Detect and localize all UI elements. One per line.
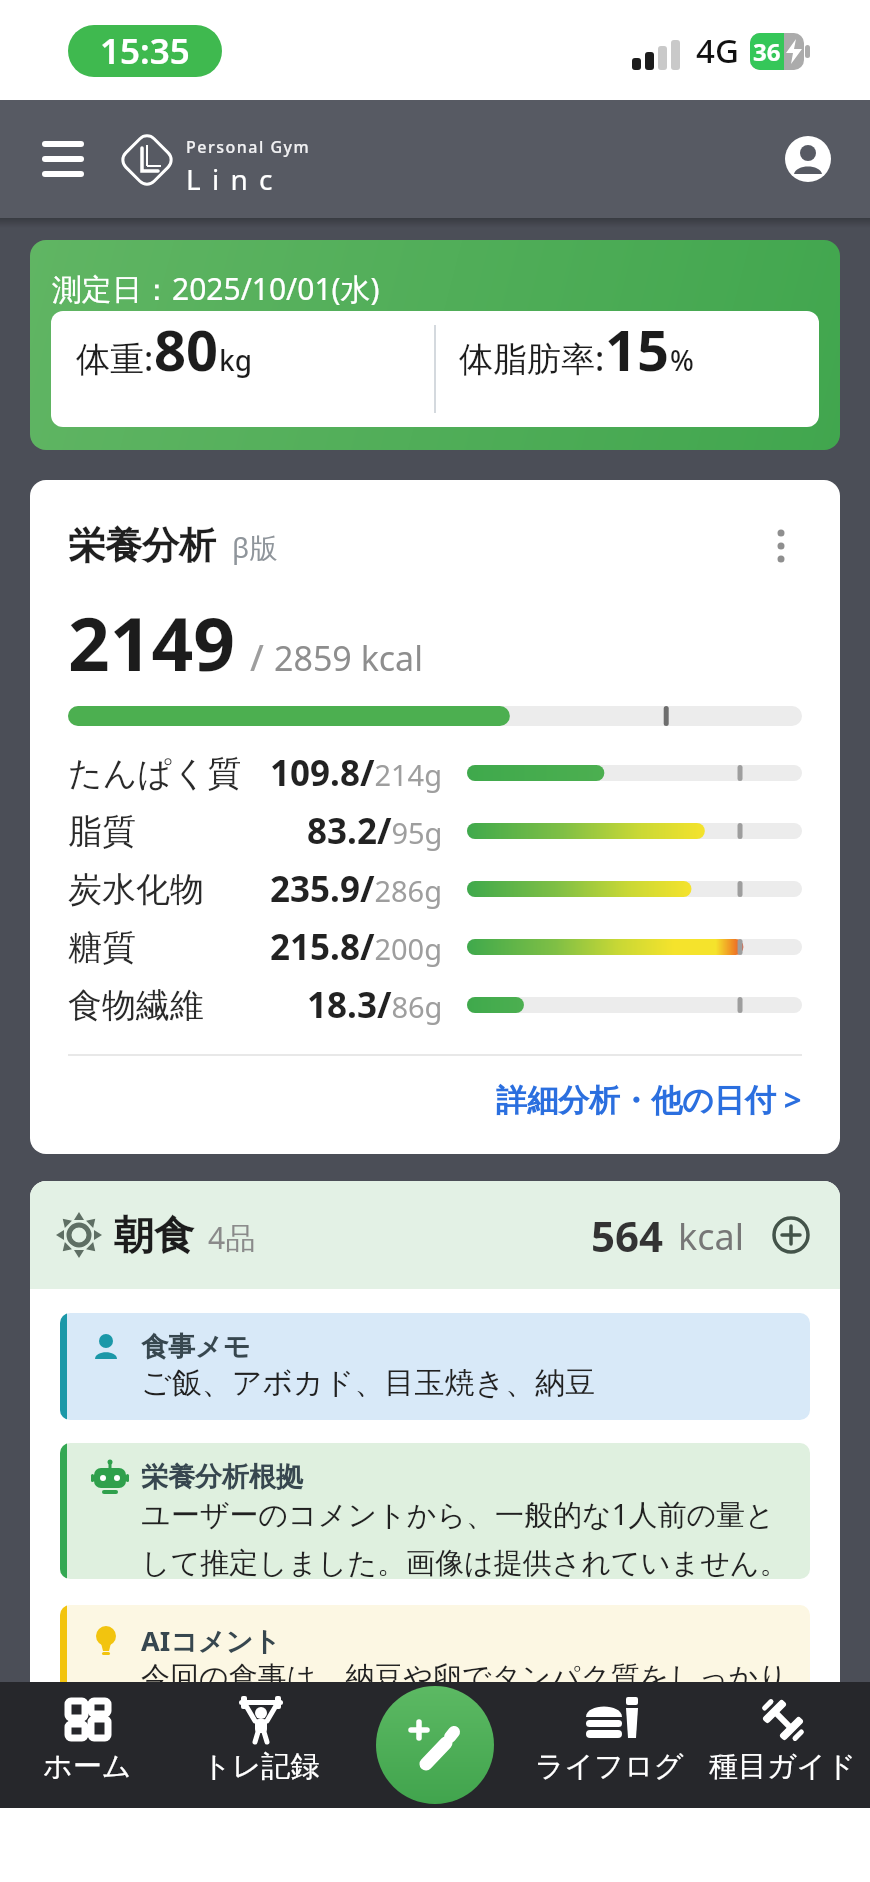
staticText: 脂質 [68,810,136,853]
staticText: ホーム [43,1748,132,1785]
button[interactable]: ライフログ [522,1682,696,1808]
staticText: 18.3/86g [307,981,443,1029]
staticText: 2149 [68,593,236,692]
staticText: 15 [605,311,670,387]
staticText: Personal Gym [186,136,311,158]
staticText: 詳細分析・他の日付 > [496,1078,802,1120]
button[interactable]: トレ記録 [174,1682,348,1808]
staticText: kg [219,341,253,379]
staticText: トレ記録 [202,1748,320,1785]
staticText: β版 [232,528,278,566]
button[interactable]: 種目ガイド [696,1682,870,1808]
staticText: 食事メモ [141,1330,251,1364]
staticText: 109.8/214g [270,749,443,797]
button[interactable] [376,1686,494,1804]
staticText: 炭水化物 [68,868,204,911]
button[interactable] [30,135,96,183]
staticText: / [250,633,264,682]
staticText: 体脂肪率: [459,335,605,381]
staticText: 215.8/200g [270,923,443,971]
staticText: AIコメント [141,1622,281,1659]
staticText: 235.9/286g [270,865,443,913]
staticText: ご飯、アボカド、目玉焼き、納豆 [141,1364,596,1402]
button[interactable]: 食事メモ [60,1313,810,1420]
button[interactable] [772,1216,810,1254]
staticText: 564 [591,1207,664,1264]
button[interactable]: ホーム [0,1682,174,1808]
button[interactable]: 詳細分析・他の日付 > [496,1078,802,1120]
staticText: 種目ガイド [709,1748,857,1785]
staticText: 80 [154,311,219,387]
staticText: 栄養分析根拠 [141,1460,303,1494]
button[interactable]: AIコメント [60,1605,810,1775]
staticText: 朝食 [114,1210,194,1260]
staticText: kcal [678,1212,744,1261]
button[interactable] [784,135,832,183]
staticText: 食物繊維 [68,984,204,1027]
staticText: 今回の食事は、納豆や卵でタンパク質をしっかり [141,1659,788,1696]
staticText: 体重: [76,335,154,381]
button[interactable]: 栄養分析根拠 [60,1443,810,1579]
staticText: ユーザーのコメントから、一般的な1人前の量と して推定しました。画像は提供されて… [141,1494,789,1579]
staticText: たんぱく質 [68,752,242,795]
staticText: % [670,341,694,379]
staticText: 測定日：2025/10/01(水) [52,268,380,309]
button[interactable]: 測定日：2025/10/01(水) [30,240,840,450]
staticText: 栄養分析 [68,522,216,569]
staticText: 2859 kcal [274,635,423,681]
staticText: 15:35 [100,27,190,75]
staticText: ライフログ [535,1748,684,1785]
staticText: 糖質 [68,926,136,969]
staticText: 4G [696,28,739,73]
staticText: L i n c [186,160,275,198]
button[interactable] [776,526,786,566]
staticText: 83.2/95g [307,807,443,855]
staticText: 4品 [208,1217,256,1258]
staticText: 36 [753,35,781,68]
